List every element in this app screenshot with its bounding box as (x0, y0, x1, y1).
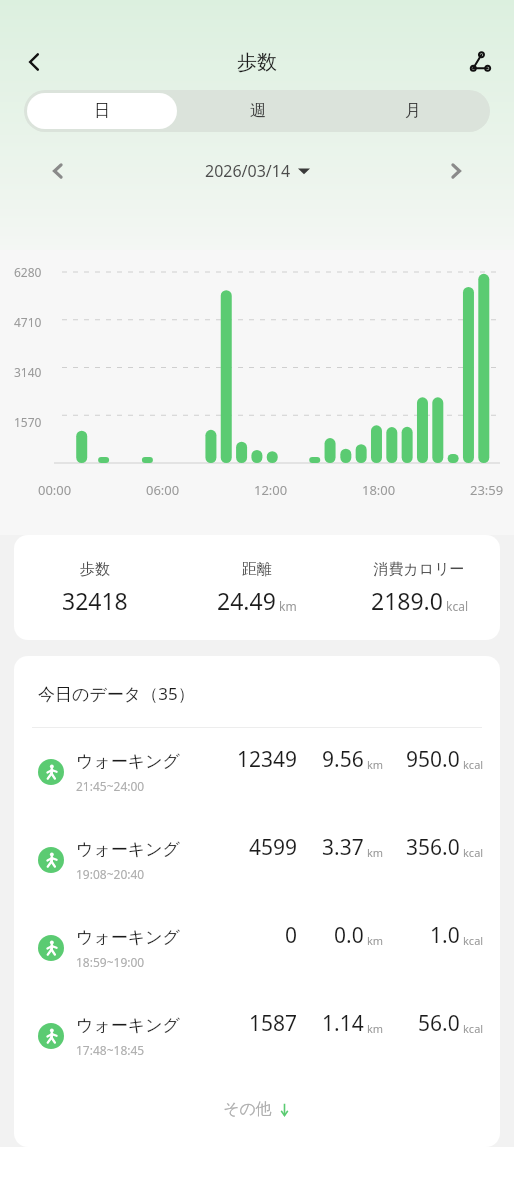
staticText: kcal (463, 1021, 484, 1036)
staticText: kcal (463, 933, 484, 948)
staticText: 23:59 (470, 481, 504, 499)
staticText: 9.56 (322, 745, 364, 774)
staticText: 歩数 (237, 50, 277, 75)
button[interactable]: Back (10, 38, 58, 86)
button[interactable]: Previous day (36, 149, 80, 193)
staticText: 0.0 (334, 921, 364, 950)
staticText: km (367, 757, 384, 772)
button[interactable]: ウォーキング (14, 992, 500, 1080)
staticText: 月 (405, 101, 421, 121)
staticText: 6280 (14, 264, 42, 280)
button[interactable]: 月 (338, 93, 487, 129)
staticText: 3140 (14, 364, 42, 380)
staticText: 週 (250, 101, 266, 121)
button[interactable]: その他 (14, 1080, 500, 1138)
button[interactable]: ウォーキング (14, 904, 500, 992)
staticText: kcal (463, 845, 484, 860)
staticText: 2189.0 (371, 585, 443, 616)
staticText: 3.37 (322, 833, 364, 862)
staticText: 2026/03/14 (205, 160, 291, 182)
staticText: 12349 (237, 745, 298, 774)
staticText: 18:00 (362, 481, 396, 499)
staticText: ウォーキング (76, 927, 180, 948)
staticText: 消費カロリー (373, 560, 465, 579)
staticText: 950.0 (406, 745, 460, 774)
button[interactable]: ウォーキング (14, 728, 500, 816)
staticText: 0 (285, 921, 298, 950)
staticText: kcal (446, 598, 468, 614)
staticText: 21:45~24:00 (76, 778, 145, 794)
staticText: 距離 (242, 560, 272, 579)
staticText: 00:00 (38, 481, 72, 499)
button[interactable]: ウォーキング (14, 816, 500, 904)
staticText: km (367, 845, 384, 860)
staticText: kcal (463, 757, 484, 772)
staticText: 1.0 (430, 921, 460, 950)
staticText: 06:00 (146, 481, 180, 499)
staticText: 日 (94, 101, 110, 121)
staticText: 56.0 (418, 1009, 460, 1038)
button[interactable]: 週 (183, 93, 332, 129)
staticText: ウォーキング (76, 839, 180, 860)
staticText: km (367, 1021, 384, 1036)
staticText: 今日のデータ（35） (38, 682, 195, 705)
staticText: 1.14 (322, 1009, 364, 1038)
staticText: km (367, 933, 384, 948)
staticText: 17:48~18:45 (76, 1042, 145, 1058)
staticText: 1570 (14, 414, 42, 430)
button[interactable]: Share (456, 38, 504, 86)
staticText: 4710 (14, 314, 42, 330)
staticText: km (279, 598, 297, 614)
button[interactable]: 歩数 (14, 535, 500, 640)
staticText: 12:00 (254, 481, 288, 499)
staticText: 18:59~19:00 (76, 954, 145, 970)
staticText: ウォーキング (76, 1015, 180, 1036)
staticText: 1587 (249, 1009, 298, 1038)
staticText: 24.49 (217, 585, 276, 616)
staticText: 4599 (249, 833, 298, 862)
staticText: 19:08~20:40 (76, 866, 145, 882)
button[interactable]: 日 (27, 93, 177, 129)
staticText: 歩数 (80, 560, 110, 579)
staticText: 32418 (62, 585, 128, 616)
staticText: 356.0 (406, 833, 460, 862)
staticText: ウォーキング (76, 751, 180, 772)
staticText: その他 (223, 1099, 272, 1119)
button[interactable]: Next day (434, 149, 478, 193)
